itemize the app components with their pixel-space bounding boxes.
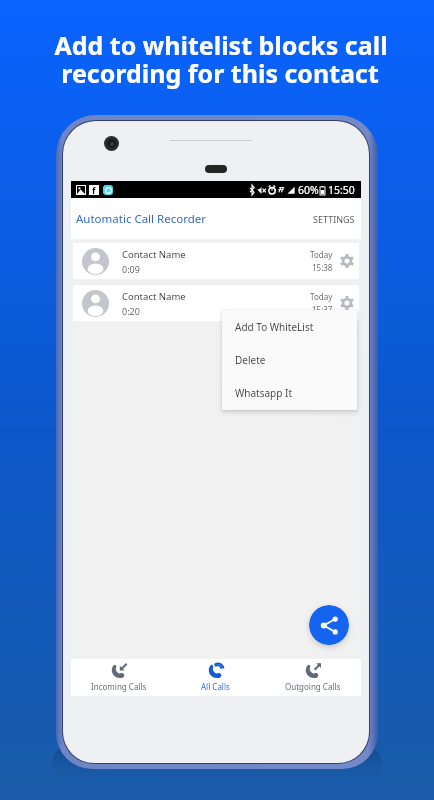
staticText: f xyxy=(92,184,96,194)
button[interactable]: Outgoing Calls xyxy=(264,659,361,696)
staticText: All Calls xyxy=(201,681,230,692)
staticText: Contact Name xyxy=(122,290,186,303)
button[interactable]: Share xyxy=(309,605,349,645)
staticText: 15:38 xyxy=(312,262,333,273)
staticText: 60% xyxy=(298,183,319,197)
staticText: Outgoing Calls xyxy=(285,681,341,692)
staticText: Today xyxy=(310,249,333,260)
staticText: recording for this contact xyxy=(3,56,434,90)
button[interactable]: Options xyxy=(340,254,354,268)
button[interactable]: Contact Name xyxy=(73,285,359,321)
button[interactable]: Whatsapp It xyxy=(222,376,357,409)
staticText: Today xyxy=(310,291,333,302)
button[interactable]: SETTINGS xyxy=(303,203,361,235)
staticText: Incoming Calls xyxy=(91,681,147,692)
staticText: 15:37 xyxy=(312,304,333,315)
staticText: Delete xyxy=(235,353,266,367)
button[interactable]: Delete xyxy=(222,343,357,376)
staticText: Contact Name xyxy=(122,248,186,261)
staticText: Automatic Call Recorder xyxy=(76,211,206,227)
button[interactable]: Contact Name xyxy=(73,243,359,279)
staticText: Add To WhiteList xyxy=(235,320,314,334)
staticText: Whatsapp It xyxy=(235,386,292,400)
staticText: Add to whitelist blocks call xyxy=(4,28,434,62)
button[interactable]: Incoming Calls xyxy=(71,659,167,696)
staticText: 15:50 xyxy=(328,183,355,197)
staticText: SETTINGS xyxy=(313,213,355,225)
staticText: 0:09 xyxy=(122,263,140,275)
button[interactable]: All Calls xyxy=(167,659,264,696)
button[interactable]: Add To WhiteList xyxy=(222,310,357,343)
button[interactable]: Options xyxy=(340,296,354,310)
staticText: 0:20 xyxy=(122,305,140,317)
